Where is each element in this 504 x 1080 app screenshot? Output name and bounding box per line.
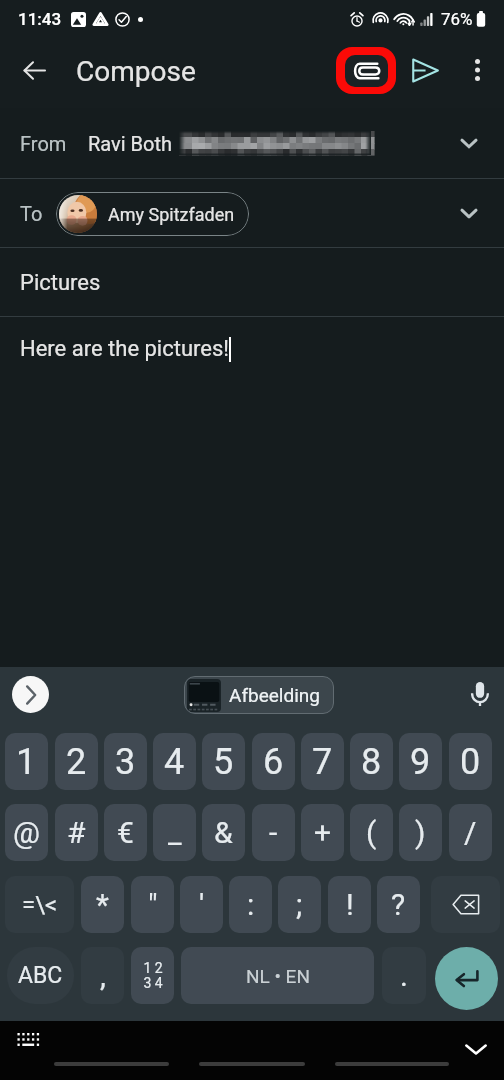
button[interactable]: Enter — [435, 947, 498, 1010]
button[interactable]: ' — [180, 876, 223, 933]
button[interactable]: From — [0, 108, 504, 178]
staticText: : — [247, 887, 255, 922]
staticText: / — [464, 815, 477, 850]
button[interactable]: =\< — [5, 876, 74, 933]
staticText: 9 — [410, 741, 431, 783]
button[interactable]: , — [81, 947, 124, 1004]
button[interactable]: Voice input — [462, 676, 498, 712]
staticText: ( — [366, 815, 377, 850]
staticText: 76% — [441, 9, 473, 29]
button[interactable]: ! — [328, 876, 371, 933]
staticText: ? — [391, 887, 406, 922]
staticText: From — [20, 132, 67, 155]
staticText: Amy Spitzfaden — [108, 204, 235, 225]
button[interactable]: ; — [278, 876, 321, 933]
button[interactable]: 4 — [153, 733, 196, 790]
staticText: @ — [13, 815, 40, 850]
staticText: ABC — [18, 962, 63, 989]
button[interactable]: € — [104, 804, 147, 861]
staticText: 0 — [460, 741, 481, 783]
staticText: ) — [415, 815, 426, 850]
button[interactable]: # — [55, 804, 98, 861]
button[interactable]: 8 — [350, 733, 393, 790]
button[interactable]: Home — [199, 1062, 305, 1066]
staticText: , — [100, 958, 106, 993]
button[interactable]: Afbeelding — [184, 676, 334, 714]
staticText: ! — [346, 887, 354, 922]
button[interactable]: ? — [377, 876, 420, 933]
staticText: 3 — [115, 741, 136, 783]
button[interactable]: Recent apps — [335, 1062, 449, 1066]
button[interactable]: @ — [5, 804, 48, 861]
button[interactable]: 3 — [104, 733, 147, 790]
button[interactable]: * — [81, 876, 124, 933]
staticText: 8 — [361, 741, 382, 783]
staticText: # — [67, 815, 86, 850]
button[interactable]: Here are the pictures! — [0, 317, 504, 657]
button[interactable]: ( — [350, 804, 393, 861]
staticText: ' — [199, 887, 205, 922]
button[interactable]: NL • EN — [181, 947, 374, 1004]
staticText: 5 — [213, 741, 234, 783]
button[interactable]: Expand toolbar — [12, 676, 49, 713]
button[interactable]: Hide keyboard — [454, 1027, 498, 1071]
button[interactable]: - — [252, 804, 295, 861]
staticText: Pictures — [20, 270, 101, 296]
staticText: NL • EN — [246, 965, 310, 987]
staticText: _ — [168, 815, 182, 850]
button[interactable]: ) — [399, 804, 442, 861]
button[interactable]: & — [202, 804, 245, 861]
staticText: 7 — [312, 741, 333, 783]
staticText: € — [117, 815, 134, 850]
button[interactable]: Amy Spitzfaden — [56, 192, 249, 236]
button[interactable]: 2 — [55, 733, 98, 790]
staticText: & — [214, 815, 233, 850]
button[interactable]: " — [131, 876, 174, 933]
button[interactable]: Back — [54, 1062, 169, 1066]
button[interactable]: 7 — [301, 733, 344, 790]
button[interactable]: + — [301, 804, 344, 861]
button[interactable]: 0 — [449, 733, 492, 790]
button[interactable]: 9 — [399, 733, 442, 790]
staticText: * — [96, 887, 109, 922]
button[interactable]: 1 — [5, 733, 48, 790]
button[interactable]: 6 — [252, 733, 295, 790]
button[interactable]: Send — [403, 48, 447, 92]
staticText: To — [20, 202, 43, 225]
staticText: + — [314, 815, 332, 850]
button[interactable]: Navigate up — [12, 48, 57, 93]
staticText: - — [269, 815, 278, 850]
staticText: =\< — [22, 891, 58, 919]
button[interactable]: 1 2 3 4 — [131, 947, 174, 1004]
button[interactable]: ABC — [7, 947, 74, 1004]
staticText: 11:43 — [18, 9, 62, 29]
staticText: . — [400, 958, 408, 993]
staticText: Compose — [76, 55, 196, 88]
button[interactable]: _ — [153, 804, 196, 861]
staticText: Here are the pictures! — [20, 336, 229, 362]
button[interactable]: Pictures — [0, 248, 504, 317]
staticText: 6 — [263, 741, 284, 783]
staticText: Ravi Both — [88, 132, 172, 155]
button[interactable]: Show keyboard — [6, 1021, 50, 1061]
button[interactable]: Attach file — [336, 47, 396, 94]
staticText: 1 2 3 4 — [143, 960, 163, 991]
button[interactable]: 5 — [202, 733, 245, 790]
button[interactable]: . — [382, 947, 426, 1004]
staticText: 1 — [16, 741, 37, 783]
button[interactable]: Backspace — [431, 876, 500, 933]
button[interactable]: To — [0, 179, 504, 248]
button[interactable]: : — [229, 876, 272, 933]
staticText: 4 — [164, 741, 185, 783]
button[interactable]: More options — [455, 48, 499, 92]
staticText: " — [148, 887, 158, 922]
button[interactable]: / — [449, 804, 492, 861]
staticText: 2 — [66, 741, 87, 783]
staticText: ; — [296, 887, 303, 922]
staticText: Afbeelding — [229, 684, 320, 706]
